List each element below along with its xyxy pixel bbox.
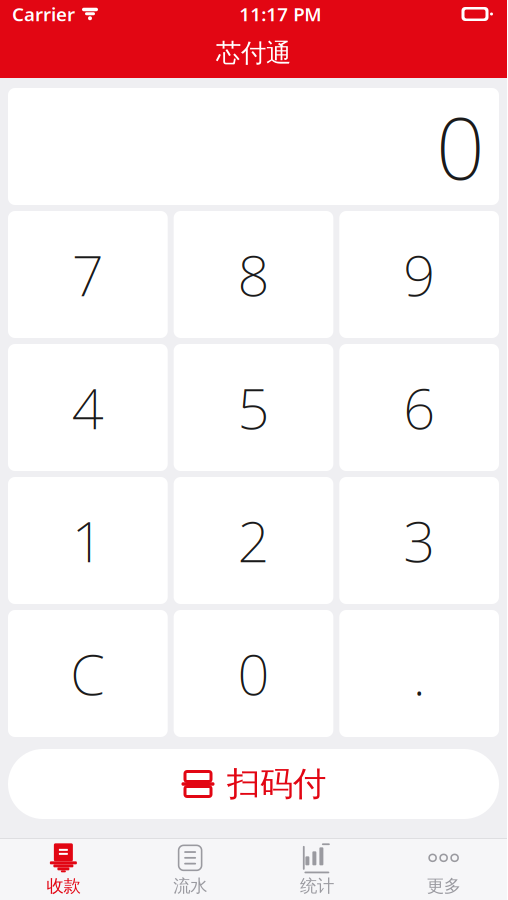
staticText: 0 (436, 90, 485, 203)
staticText: 4 (72, 370, 104, 445)
staticText: 扫码付 (227, 763, 326, 804)
staticText: 收款 (46, 875, 80, 897)
button[interactable]: 3 (339, 477, 499, 604)
staticText: 流水 (173, 875, 207, 897)
button[interactable]: 0 (174, 610, 333, 737)
button[interactable]: 9 (339, 211, 499, 338)
button[interactable]: . (339, 610, 499, 737)
button[interactable]: 8 (174, 211, 333, 338)
staticText: 3 (403, 503, 435, 578)
staticText: 芯付通 (216, 37, 291, 68)
button[interactable]: 4 (8, 344, 168, 471)
button[interactable]: 扫码付 (8, 749, 499, 819)
button[interactable]: C (8, 610, 168, 737)
button[interactable]: 1 (8, 477, 168, 604)
staticText: 6 (403, 370, 435, 445)
staticText: 1 (72, 503, 104, 578)
staticText: 更多 (427, 875, 461, 897)
button[interactable]: 6 (339, 344, 499, 471)
staticText: 11:17 PM (239, 2, 321, 26)
button[interactable]: 收款 (0, 839, 127, 900)
staticText: 0 (237, 636, 269, 711)
button[interactable]: 7 (8, 211, 168, 338)
button[interactable]: 统计 (253, 839, 380, 900)
staticText: . (413, 636, 426, 711)
staticText: 8 (237, 237, 269, 312)
staticText: 5 (237, 370, 269, 445)
staticText: 7 (72, 237, 104, 312)
button[interactable]: 2 (174, 477, 333, 604)
staticText: 9 (403, 237, 435, 312)
staticText: C (70, 636, 105, 711)
staticText: 2 (237, 503, 269, 578)
button[interactable]: 5 (174, 344, 333, 471)
button[interactable]: 流水 (127, 839, 254, 900)
button[interactable]: 更多 (380, 839, 507, 900)
staticText: Carrier (12, 2, 75, 26)
staticText: 统计 (300, 875, 334, 897)
